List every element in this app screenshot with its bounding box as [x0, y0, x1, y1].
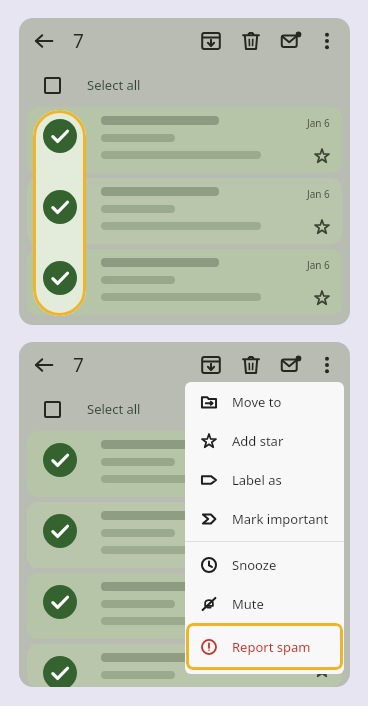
button[interactable]: Delete: [236, 26, 266, 56]
button[interactable]: Mark unread: [276, 26, 306, 56]
button[interactable]: Archive: [196, 26, 226, 56]
staticText: 7: [73, 352, 84, 378]
staticText: Select all: [87, 76, 141, 94]
button[interactable]: Back: [29, 26, 59, 56]
button[interactable]: Back: [29, 350, 59, 380]
button[interactable]: Select all: [19, 70, 350, 100]
staticText: Jan 6: [307, 116, 330, 130]
button[interactable]: Select all: [19, 394, 350, 424]
button[interactable]: Add star: [185, 421, 344, 460]
button[interactable]: Archive: [196, 350, 226, 380]
staticText: Jan 6: [307, 258, 330, 272]
button[interactable]: Mark unread: [276, 350, 306, 380]
staticText: Move to: [232, 393, 282, 411]
button[interactable]: Snooze: [185, 545, 344, 584]
button[interactable]: Move to: [185, 382, 344, 421]
staticText: Report spam: [232, 638, 311, 656]
staticText: Mute: [232, 595, 264, 613]
button[interactable]: Jan 6: [27, 249, 342, 315]
button[interactable]: More options: [312, 26, 342, 56]
staticText: Snooze: [232, 556, 277, 574]
button[interactable]: Report spam: [186, 623, 343, 670]
staticText: Label as: [232, 471, 282, 489]
button[interactable]: More options: [312, 350, 342, 380]
staticText: Select all: [87, 400, 141, 418]
staticText: 7: [73, 28, 84, 54]
button[interactable]: Jan 6: [27, 644, 342, 687]
button[interactable]: Label as: [185, 460, 344, 499]
button[interactable]: Jan 6: [27, 573, 342, 639]
staticText: Jan 6: [307, 511, 330, 525]
button[interactable]: Mark important: [185, 499, 344, 538]
button[interactable]: Jan 6: [27, 431, 342, 497]
button[interactable]: Mute: [185, 584, 344, 623]
button[interactable]: Delete: [236, 350, 266, 380]
staticText: Add star: [232, 432, 284, 450]
staticText: Jan 6: [307, 187, 330, 201]
button[interactable]: Jan 6: [27, 178, 342, 244]
staticText: Mark important: [232, 510, 329, 528]
button[interactable]: Jan 6: [27, 107, 342, 173]
button[interactable]: Jan 6: [27, 502, 342, 568]
